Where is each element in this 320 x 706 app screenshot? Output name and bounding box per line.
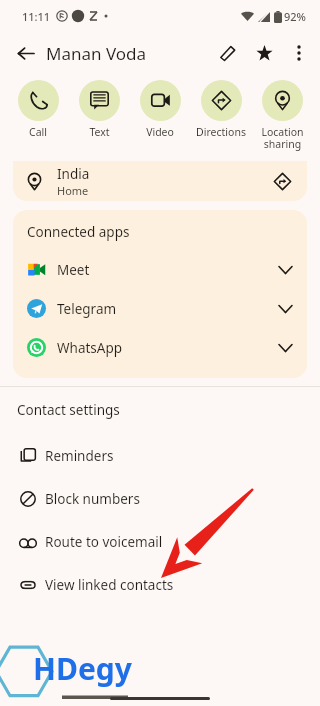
- button[interactable]: Directions: [267, 166, 297, 196]
- button[interactable]: Meet: [13, 250, 307, 289]
- staticText: Text: [89, 125, 110, 139]
- staticText: Connected apps: [27, 223, 130, 241]
- staticText: Contact settings: [17, 401, 120, 419]
- button[interactable]: Edit: [210, 35, 246, 71]
- staticText: Block numbers: [45, 490, 140, 508]
- staticText: 11:11: [22, 9, 51, 24]
- staticText: 92%: [284, 9, 306, 24]
- staticText: Manan Voda: [46, 42, 147, 65]
- button[interactable]: Video: [130, 80, 190, 139]
- button[interactable]: Back: [8, 36, 42, 70]
- button[interactable]: Block numbers: [0, 477, 320, 520]
- staticText: Meet: [57, 261, 90, 279]
- button[interactable]: Reminders: [0, 434, 320, 477]
- staticText: Call: [29, 125, 47, 139]
- button[interactable]: India: [13, 161, 307, 201]
- staticText: Telegram: [57, 300, 117, 318]
- staticText: Video: [146, 125, 174, 139]
- button[interactable]: More options: [282, 36, 316, 70]
- staticText: Location sharing: [261, 125, 304, 151]
- button[interactable]: Favorite: [246, 35, 282, 71]
- staticText: Route to voicemail: [45, 533, 163, 551]
- staticText: Directions: [196, 125, 246, 139]
- button[interactable]: Location sharing: [252, 80, 312, 151]
- button[interactable]: Route to voicemail: [0, 520, 320, 563]
- button[interactable]: View linked contacts: [0, 563, 320, 606]
- button[interactable]: WhatsApp: [13, 328, 307, 367]
- button[interactable]: Text: [69, 80, 129, 139]
- staticText: Home: [57, 183, 89, 198]
- staticText: View linked contacts: [45, 576, 174, 594]
- staticText: Reminders: [45, 447, 114, 465]
- button[interactable]: Directions: [191, 80, 251, 139]
- staticText: India: [57, 165, 90, 183]
- button[interactable]: Telegram: [13, 289, 307, 328]
- button[interactable]: Call: [8, 80, 68, 139]
- staticText: HDegy: [33, 648, 132, 689]
- staticText: WhatsApp: [57, 339, 123, 357]
